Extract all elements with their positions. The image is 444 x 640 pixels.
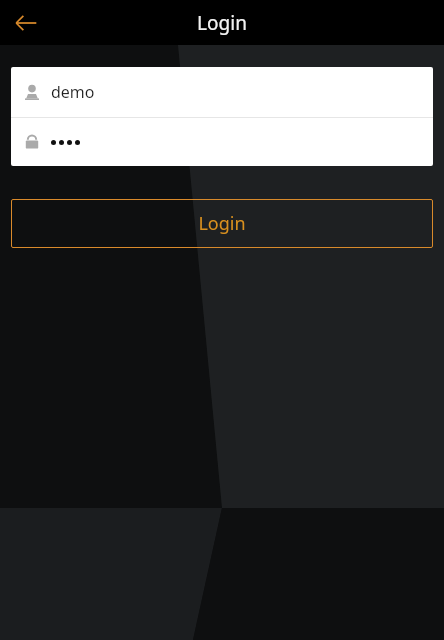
staticText: demo <box>51 81 95 103</box>
button[interactable]: demo <box>11 67 433 117</box>
button[interactable]: Login <box>11 199 433 248</box>
staticText: Login <box>198 211 246 236</box>
staticText: Login <box>197 10 247 36</box>
button[interactable]: Back <box>6 3 46 43</box>
button[interactable] <box>11 118 433 166</box>
